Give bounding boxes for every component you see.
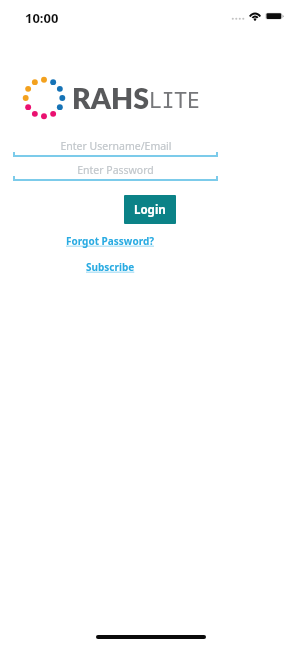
staticText: Enter Username/Email [60,139,172,153]
button[interactable]: Forgot Password? [62,233,159,249]
staticText: LITE [149,89,200,113]
other: Status icons [228,8,288,24]
staticText: Enter Password [77,163,154,177]
staticText: Forgot Password? [66,234,155,248]
button[interactable]: Enter Username/Email [13,135,218,157]
staticText: RAHS [72,81,149,115]
staticText: Login [134,202,166,218]
button[interactable]: Login [124,195,176,224]
button[interactable]: Enter Password [13,159,218,181]
staticText: 10:00 [25,9,59,27]
staticText: Subscribe [86,260,135,274]
button[interactable]: Subscribe [82,259,139,275]
